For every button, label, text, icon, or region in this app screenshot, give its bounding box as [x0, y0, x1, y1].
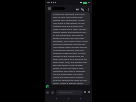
button[interactable]: Message here	[56, 90, 83, 95]
button[interactable]: Thanks for reaching out! We'd love to he…	[51, 12, 90, 85]
button[interactable]: Video call	[75, 7, 79, 11]
button[interactable]: Recents	[78, 96, 83, 101]
button[interactable]: Contact avatar	[48, 7, 51, 10]
button[interactable]: Contact name	[52, 7, 65, 10]
staticText: Thanks for reaching out! We'd love to he…	[53, 13, 88, 85]
staticText: Message here	[59, 91, 73, 94]
button[interactable]: Back	[54, 96, 59, 101]
button[interactable]: More options	[86, 7, 90, 11]
button[interactable]: Attach	[51, 91, 54, 94]
button[interactable]: Emoji	[46, 91, 49, 94]
button[interactable]: Call	[80, 7, 84, 11]
button[interactable]: Home	[66, 96, 71, 101]
button[interactable]: Sender avatar	[46, 85, 49, 88]
